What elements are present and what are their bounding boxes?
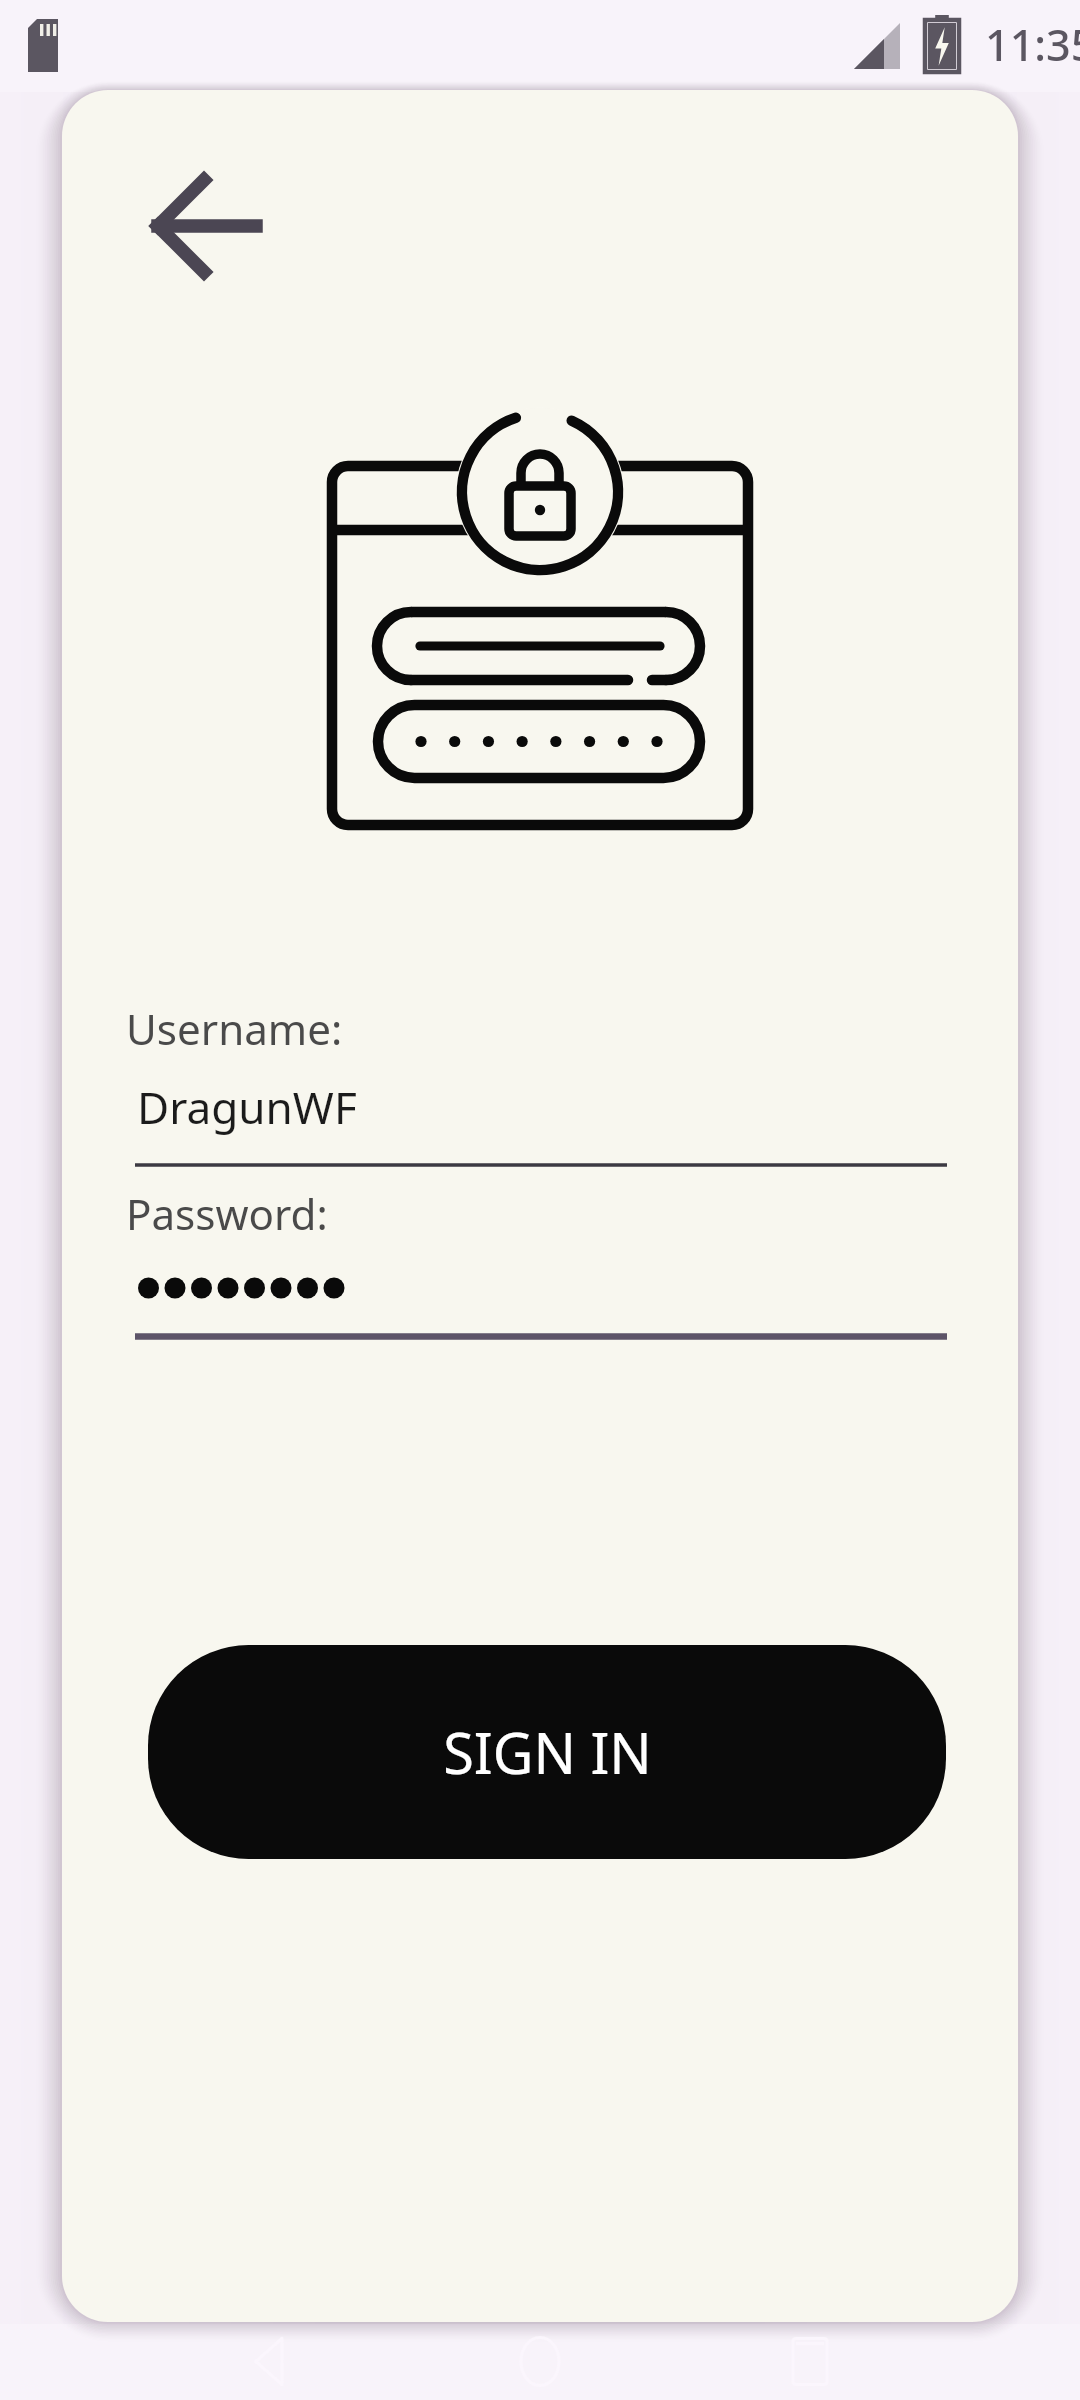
button[interactable]: Password field (128, 1250, 948, 1340)
button[interactable]: SIGN IN (148, 1645, 946, 1859)
button[interactable]: Back (120, 166, 296, 286)
button[interactable]: DragunWF (128, 1075, 948, 1170)
staticText: Password: (126, 1185, 328, 1242)
staticText: 11:35 (985, 15, 1080, 74)
button[interactable]: Recent apps (720, 2323, 900, 2400)
staticText: DragunWF (137, 1077, 357, 1137)
button[interactable]: Home (450, 2323, 630, 2400)
staticText: SIGN IN (443, 1714, 652, 1790)
button[interactable]: Back (180, 2323, 360, 2400)
staticText: Username: (126, 1000, 343, 1057)
